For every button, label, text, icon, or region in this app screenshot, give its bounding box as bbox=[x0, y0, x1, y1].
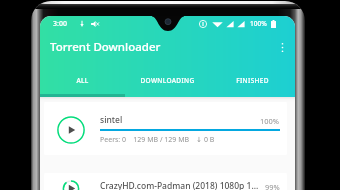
button[interactable]: Play bbox=[57, 180, 85, 190]
staticText: ALL bbox=[76, 76, 89, 85]
staticText: 99% bbox=[265, 182, 280, 190]
staticText: FINISHED bbox=[236, 76, 269, 85]
button[interactable]: ALL bbox=[40, 67, 125, 94]
button[interactable]: More options bbox=[275, 40, 289, 54]
staticText: CrazyHD.com-Padman (2018) 1080p 1... bbox=[100, 180, 261, 190]
staticText: Peers: 0 129 MB / 129 MB ↓ 0 B bbox=[100, 135, 215, 145]
staticText: sintel bbox=[100, 114, 256, 126]
button[interactable]: Play bbox=[44, 102, 287, 155]
button[interactable]: Play bbox=[57, 116, 85, 144]
staticText: 100% bbox=[260, 116, 280, 126]
button[interactable]: Play bbox=[44, 173, 287, 190]
staticText: 3:00 bbox=[53, 19, 67, 29]
staticText: DOWNLOADING bbox=[140, 76, 195, 85]
button[interactable]: DOWNLOADING bbox=[125, 67, 210, 94]
staticText: Torrent Downloader bbox=[50, 39, 161, 55]
button[interactable]: FINISHED bbox=[210, 67, 295, 94]
staticText: 100% bbox=[250, 19, 267, 28]
